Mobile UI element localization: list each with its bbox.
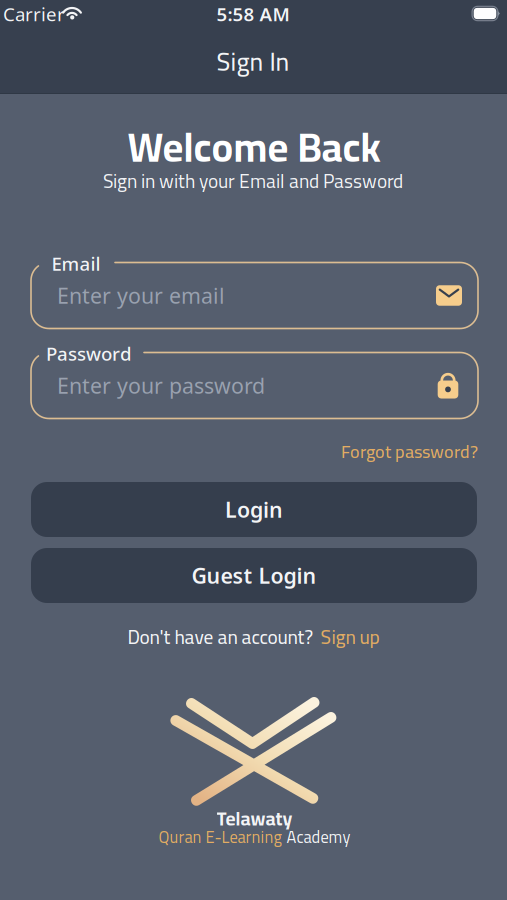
textField[interactable]: Password [57,371,437,400]
button[interactable]: Guest Login [31,548,477,603]
staticText: Email [51,251,100,276]
staticText: Login [225,495,283,524]
staticText: Don't have an account? [127,619,313,655]
staticText: Password [46,341,132,366]
button[interactable]: Forgot password? [341,435,478,468]
staticText: Academy [286,822,350,852]
staticText: Telawaty [216,800,292,837]
staticText: Enter your password [57,371,265,400]
staticText: Forgot password? [341,435,478,468]
button[interactable]: Login [31,482,477,537]
button[interactable]: Sign up [320,619,379,655]
staticText: Guest Login [191,561,316,590]
staticText: Quran E-Learning [158,822,281,852]
staticText: Sign in with your Email and Password [103,163,403,199]
staticText: Enter your email [57,281,225,310]
textField[interactable]: Email [57,281,436,310]
staticText: Sign In [216,38,289,85]
staticText: Carrier [3,2,65,26]
staticText: 5:58 AM [216,2,289,26]
staticText: Sign up [320,619,379,655]
staticText: Welcome Back [127,109,380,184]
